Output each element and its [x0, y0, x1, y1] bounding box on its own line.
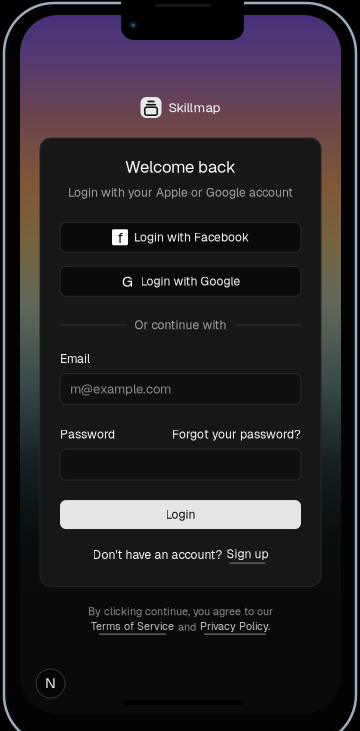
staticText: N — [45, 673, 56, 693]
staticText: and — [178, 620, 196, 634]
staticText: Privacy Policy. — [200, 619, 270, 633]
staticText: By clicking continue, you agree to our — [88, 604, 273, 618]
button[interactable]: Login — [60, 500, 301, 529]
staticText: Don't have an account? — [92, 547, 222, 563]
staticText: Forgot your password? — [172, 426, 301, 442]
staticText: Password — [60, 426, 115, 442]
button[interactable]: Sign up — [226, 546, 268, 563]
staticText: Welcome back — [125, 156, 236, 178]
staticText: f — [117, 228, 123, 247]
button[interactable]: Next.js dev tools — [36, 669, 65, 698]
button[interactable]: f — [60, 222, 301, 252]
staticText: Login with Google — [140, 273, 240, 289]
staticText: Login with Facebook — [134, 229, 249, 245]
button[interactable]: G — [60, 266, 301, 296]
button[interactable]: Forgot your password? — [172, 426, 301, 442]
staticText: Skillmap — [168, 99, 220, 116]
staticText: Login — [165, 507, 195, 522]
staticText: Email — [60, 351, 90, 366]
staticText: Or continue with — [134, 317, 226, 333]
staticText: Sign up — [226, 546, 268, 562]
staticText: m@example.com — [70, 380, 171, 397]
staticText: Terms of Service — [91, 619, 174, 633]
staticText: G — [122, 271, 133, 291]
staticText: Login with your Apple or Google account — [68, 185, 293, 200]
